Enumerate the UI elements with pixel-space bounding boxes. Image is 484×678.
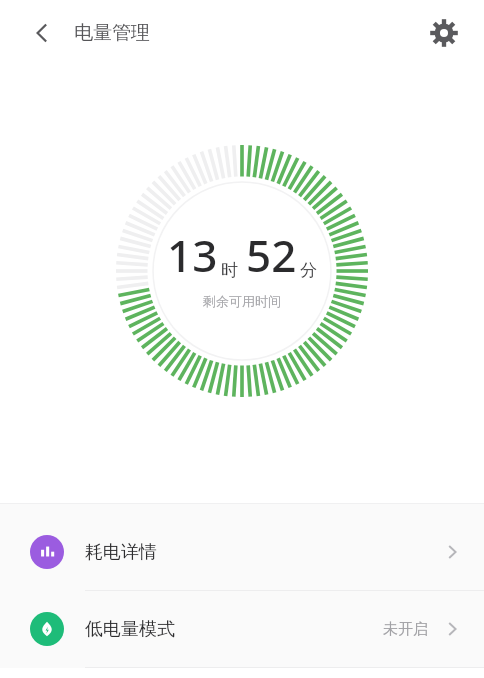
staticText: 分 <box>300 260 317 281</box>
staticText: 未开启 <box>383 620 428 639</box>
staticText: 耗电详情 <box>85 541 157 564</box>
button[interactable]: Settings <box>418 7 470 59</box>
staticText: 电量管理 <box>74 21 150 45</box>
staticText: 52 <box>246 225 297 285</box>
button[interactable]: Back <box>16 7 68 59</box>
staticText: 13 <box>167 225 218 285</box>
button[interactable]: 低电量模式 <box>0 591 484 667</box>
staticText: 剩余可用时间 <box>203 293 281 309</box>
staticText: 时 <box>221 260 238 281</box>
button[interactable]: 耗电详情 <box>0 514 484 590</box>
staticText: 低电量模式 <box>85 618 175 641</box>
